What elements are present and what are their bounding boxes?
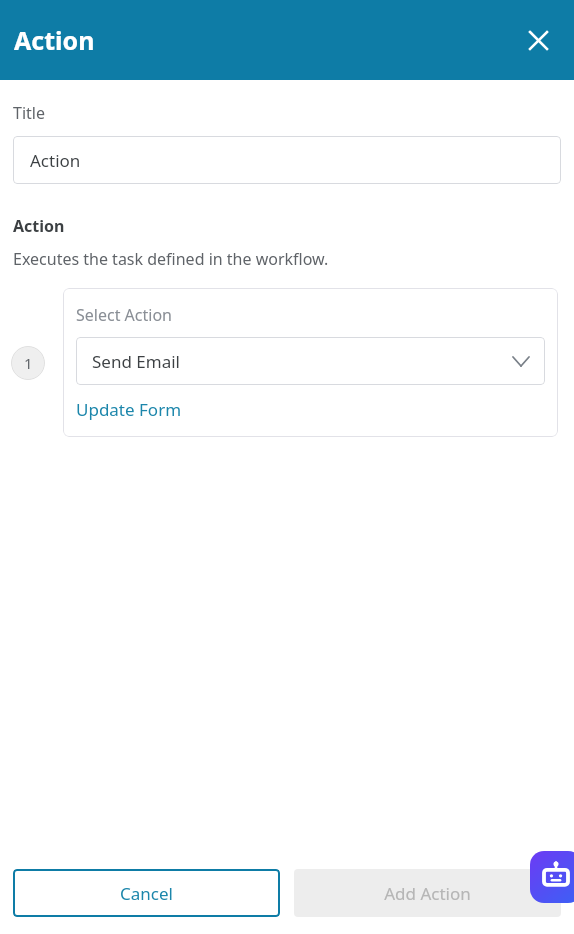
- staticText: Update Form: [76, 398, 182, 421]
- button[interactable]: Close: [522, 24, 554, 56]
- staticText: Send Email: [92, 350, 180, 373]
- staticText: Action: [14, 23, 95, 57]
- button[interactable]: Send Email: [76, 337, 545, 385]
- button[interactable]: Update Form: [76, 398, 182, 421]
- button[interactable]: Action: [13, 136, 561, 184]
- staticText: Cancel: [120, 882, 173, 905]
- staticText: Action: [13, 215, 65, 237]
- button[interactable]: Chat assistant: [530, 851, 574, 903]
- staticText: Select Action: [76, 304, 172, 326]
- staticText: Add Action: [384, 882, 471, 905]
- staticText: 1: [24, 353, 33, 373]
- staticText: Executes the task defined in the workflo…: [13, 248, 329, 270]
- staticText: Action: [30, 149, 81, 172]
- staticText: Title: [13, 102, 45, 124]
- button[interactable]: Add Action: [294, 869, 561, 917]
- button[interactable]: Cancel: [13, 869, 280, 917]
